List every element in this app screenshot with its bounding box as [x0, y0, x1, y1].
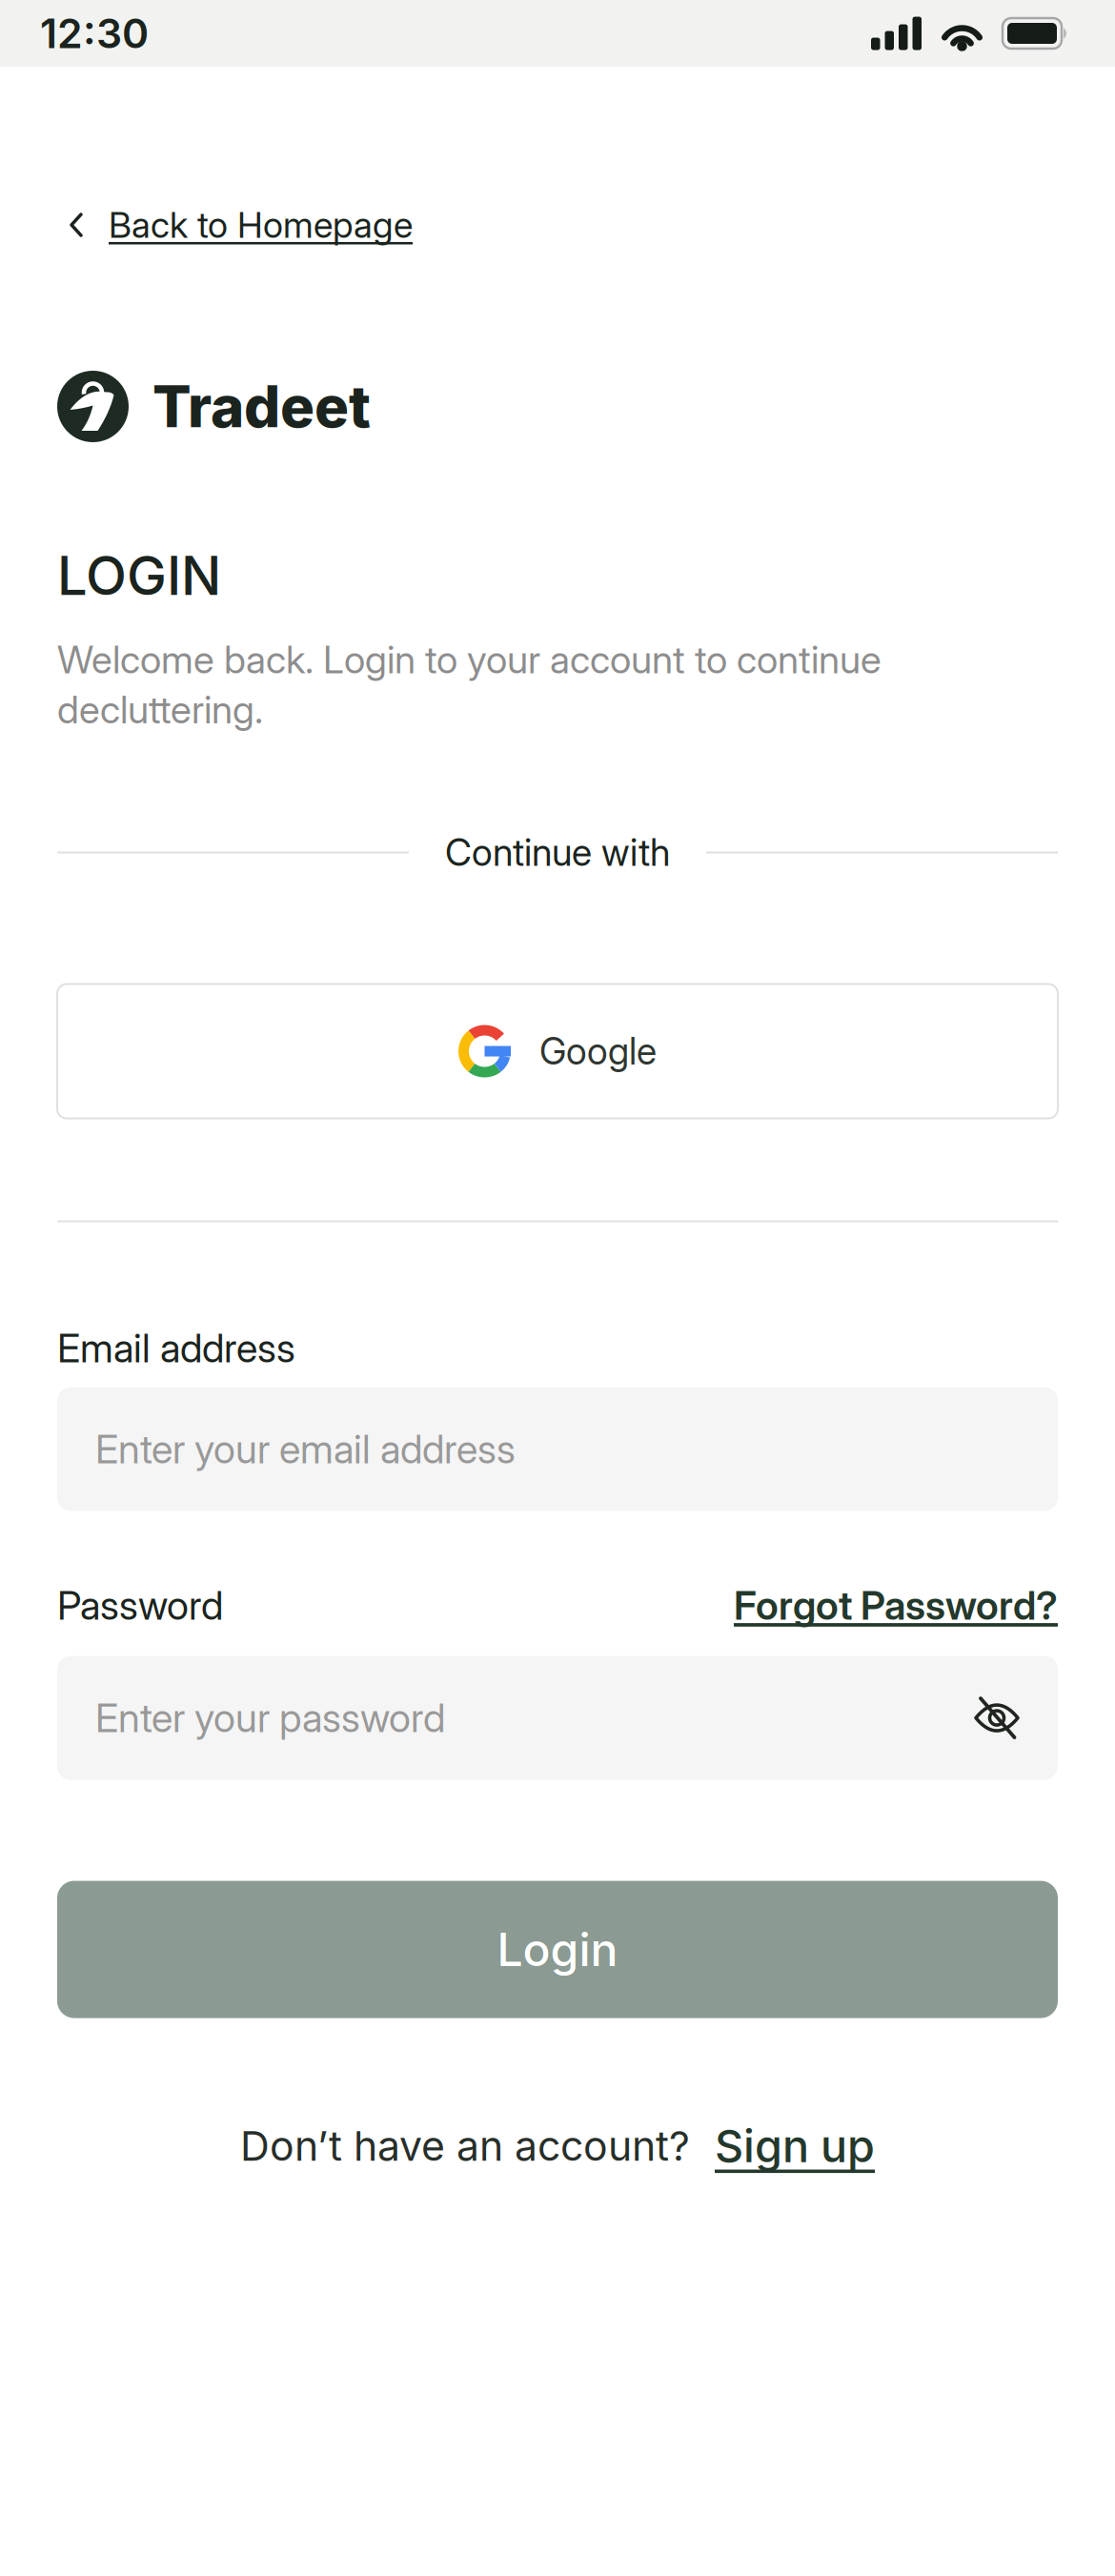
staticText: Forgot Password?: [734, 1582, 1058, 1629]
staticText: Back to Homepage: [109, 203, 413, 246]
staticText: Tradeet: [152, 372, 371, 441]
staticText: Login: [497, 1922, 618, 1977]
button[interactable]: Forgot Password?: [734, 1582, 1058, 1629]
staticText: decluttering.: [57, 686, 263, 732]
staticText: Welcome back. Login to your account to c…: [57, 636, 882, 683]
staticText: Don’t have an account?: [240, 2121, 690, 2171]
staticText: Google: [539, 1029, 657, 1074]
button[interactable]: Google: [57, 984, 1058, 1118]
staticText: Enter your password: [95, 1694, 445, 1742]
staticText: Continue with: [445, 830, 670, 875]
button[interactable]: Login: [57, 1881, 1058, 2018]
staticText: Enter your email address: [95, 1425, 516, 1473]
staticText: 12:30: [40, 9, 149, 58]
staticText: Sign up: [715, 2119, 875, 2173]
button[interactable]: Back to Homepage: [57, 201, 413, 249]
button[interactable]: Show password: [974, 1695, 1020, 1741]
staticText: Email address: [57, 1324, 295, 1372]
button[interactable]: Sign up: [715, 2119, 875, 2173]
staticText: LOGIN: [57, 543, 221, 608]
staticText: Password: [57, 1582, 223, 1629]
